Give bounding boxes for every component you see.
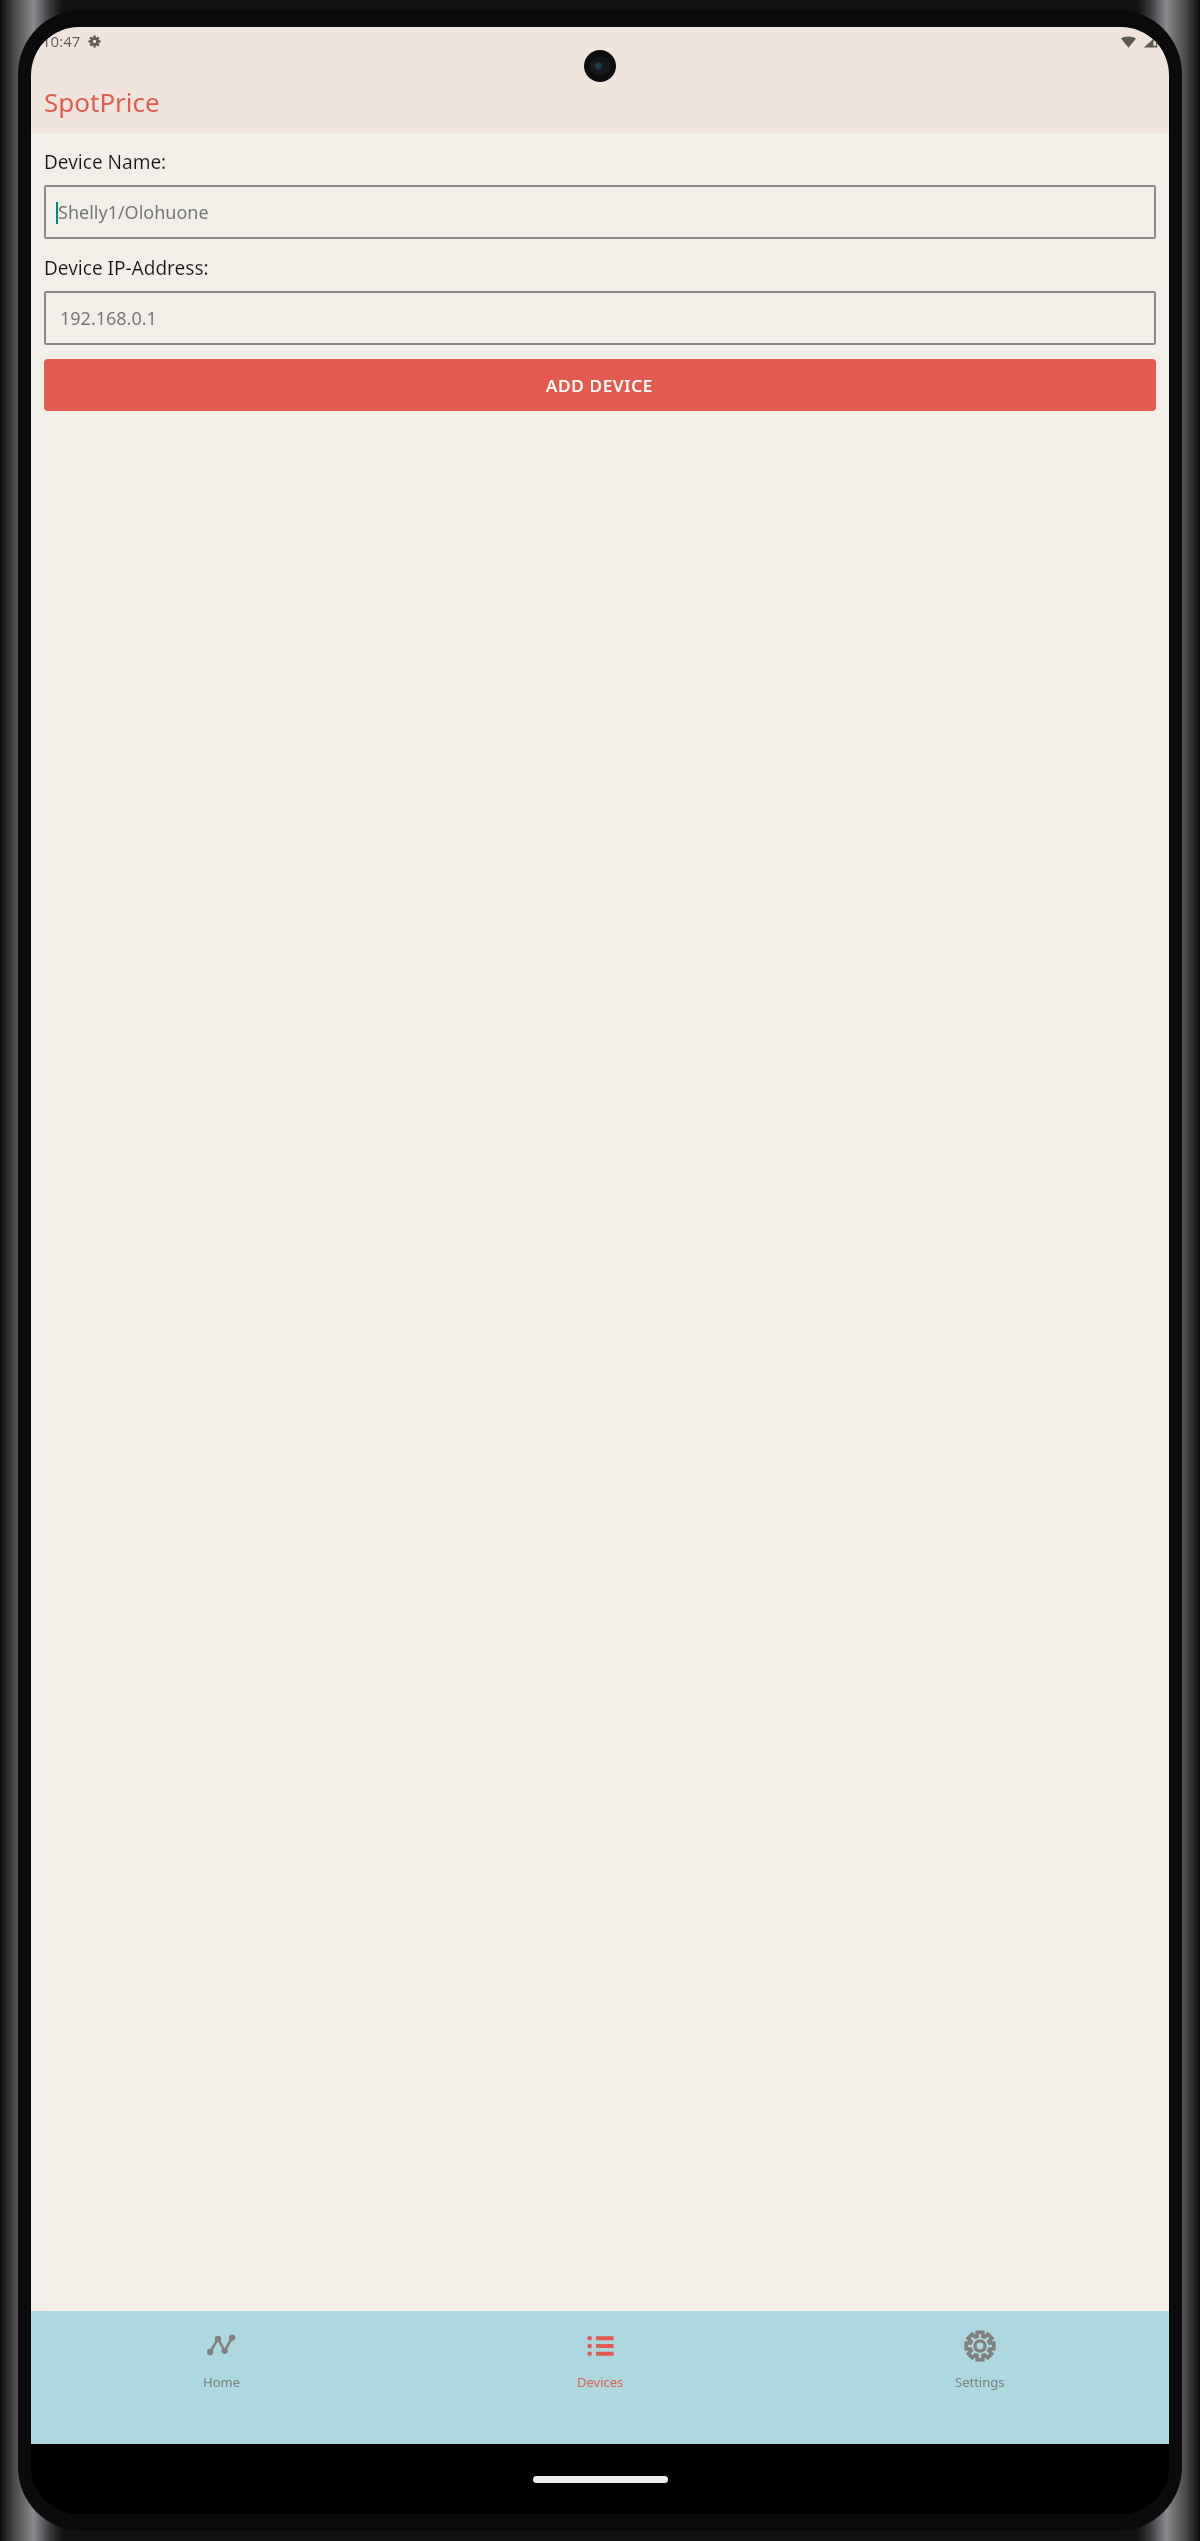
staticText: Device Name:	[44, 149, 167, 175]
button[interactable]: Shelly1/Olohuone	[56, 185, 1144, 239]
staticText: ADD DEVICE	[546, 374, 654, 397]
other: Settings	[965, 2331, 995, 2361]
button[interactable]: 192.168.0.1	[56, 291, 1144, 345]
other: Home	[206, 2331, 236, 2361]
other: Devices	[586, 2331, 616, 2361]
other: Settings	[88, 35, 101, 48]
button[interactable]: ADD DEVICE	[44, 359, 1156, 411]
staticText: SpotPrice	[44, 84, 160, 119]
staticText: 192.168.0.1	[60, 306, 157, 331]
staticText: 10:47	[42, 31, 81, 51]
button[interactable]: Settings	[790, 2311, 1169, 2444]
button[interactable]: Home	[31, 2311, 411, 2444]
staticText: Home	[203, 2373, 240, 2391]
staticText: Devices	[577, 2373, 624, 2391]
staticText: Shelly1/Olohuone	[58, 200, 209, 225]
staticText: Device IP-Address:	[44, 255, 209, 281]
button[interactable]: Devices	[411, 2311, 790, 2444]
staticText: Settings	[955, 2373, 1005, 2391]
